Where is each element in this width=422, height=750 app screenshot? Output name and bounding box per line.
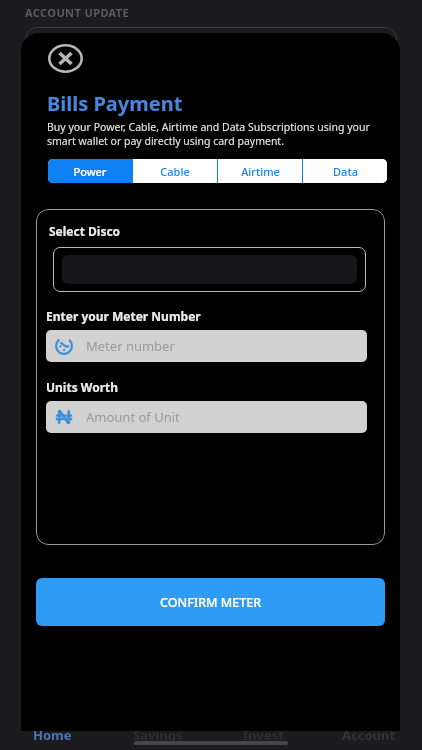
staticText: Amount of Unit — [86, 408, 180, 426]
staticText: Cable — [160, 164, 190, 179]
button[interactable]: Close — [45, 41, 85, 75]
staticText: Select Disco — [49, 223, 121, 239]
button[interactable]: Account — [316, 726, 422, 744]
staticText: Meter number — [86, 337, 175, 355]
staticText: CONFIRM METER — [160, 594, 262, 611]
staticText: Units Worth — [46, 379, 119, 395]
button[interactable] — [53, 247, 366, 292]
staticText: Data — [333, 164, 358, 179]
staticText: Power — [73, 164, 107, 179]
button[interactable]: Data — [303, 159, 387, 183]
button[interactable]: Amount of Unit — [46, 401, 367, 433]
button[interactable]: CONFIRM METER — [36, 578, 385, 626]
button[interactable]: Savings — [105, 726, 210, 744]
staticText: Home — [33, 726, 72, 744]
button[interactable]: Power — [48, 159, 132, 183]
staticText: ACCOUNT UPDATE — [25, 5, 130, 20]
staticText: Enter your Meter Number — [46, 308, 201, 324]
staticText: Savings — [133, 726, 183, 744]
staticText: Airtime — [241, 164, 280, 179]
button[interactable]: Invest — [210, 726, 316, 744]
staticText: Bills Payment — [47, 90, 183, 117]
button[interactable]: Cable — [133, 159, 217, 183]
button[interactable]: Meter number — [46, 330, 367, 362]
button[interactable]: Airtime — [218, 159, 302, 183]
staticText: Buy your Power, Cable, Airtime and Data … — [47, 120, 388, 148]
button[interactable]: Home — [0, 726, 105, 744]
staticText: Account — [342, 726, 396, 744]
staticText: Invest — [243, 726, 284, 744]
